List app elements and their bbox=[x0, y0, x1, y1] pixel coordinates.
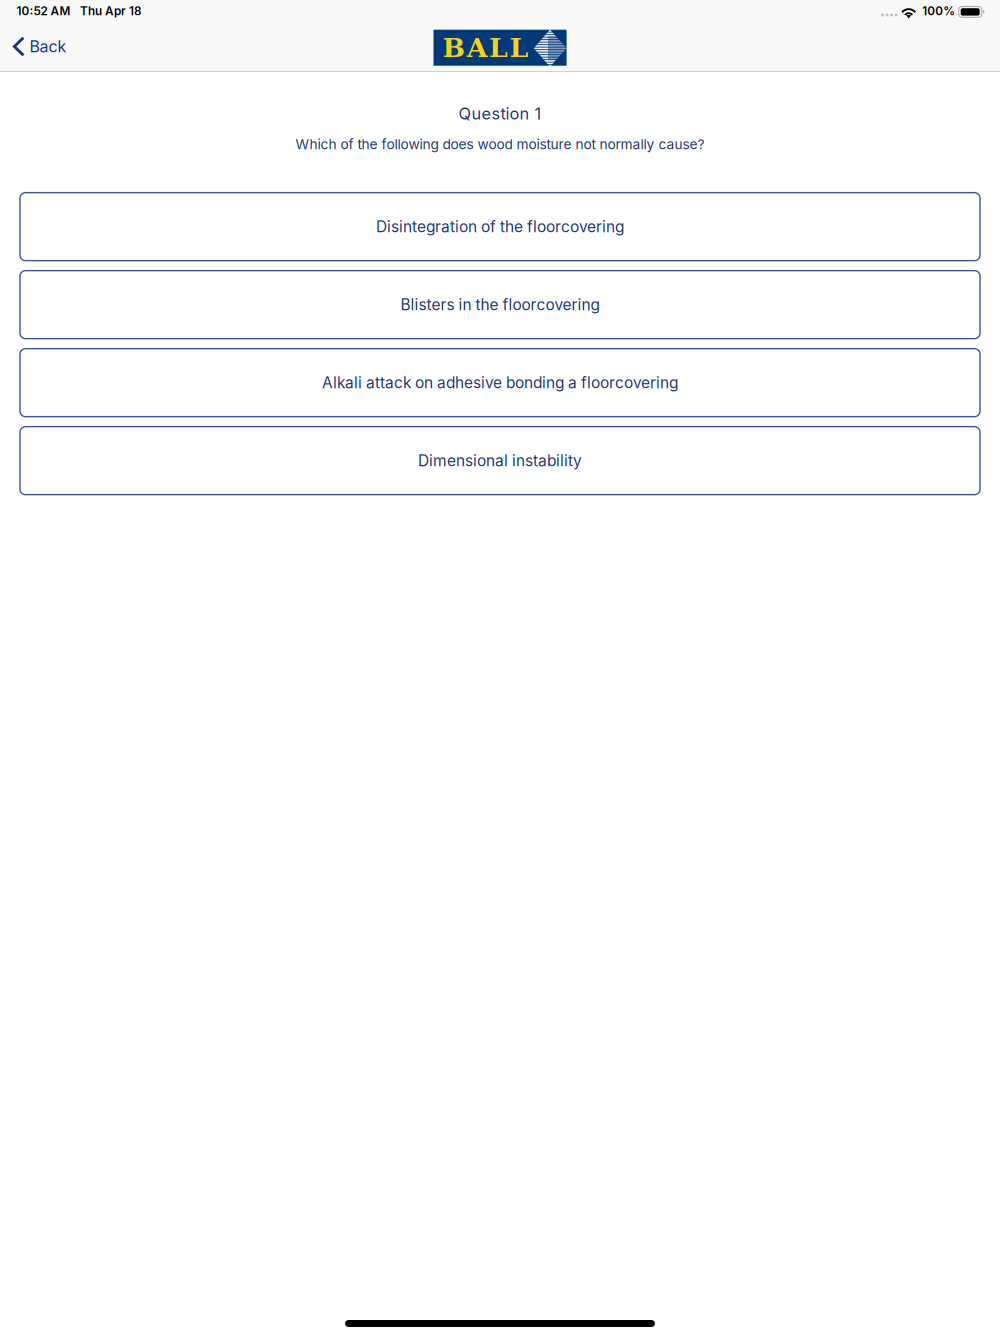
staticText: Which of the following does wood moistur… bbox=[295, 136, 704, 153]
staticText: Dimensional instability bbox=[418, 451, 582, 470]
staticText: Alkali attack on adhesive bonding a floo… bbox=[322, 373, 678, 392]
staticText: Blisters in the floorcovering bbox=[400, 295, 599, 314]
staticText: Disintegration of the floorcovering bbox=[376, 217, 624, 236]
button[interactable]: Dimensional instability bbox=[20, 427, 980, 495]
button[interactable]: Back bbox=[0, 22, 77, 70]
staticText: BALL bbox=[442, 32, 528, 63]
staticText: Question 1 bbox=[458, 103, 541, 123]
staticText: 100% bbox=[922, 4, 955, 18]
staticText: 10:52 AM bbox=[16, 4, 70, 18]
button[interactable]: Disintegration of the floorcovering bbox=[20, 193, 980, 261]
staticText: Thu Apr 18 bbox=[80, 4, 142, 18]
button[interactable]: Blisters in the floorcovering bbox=[20, 271, 980, 339]
staticText: Back bbox=[30, 37, 67, 56]
button[interactable]: Alkali attack on adhesive bonding a floo… bbox=[20, 349, 980, 417]
